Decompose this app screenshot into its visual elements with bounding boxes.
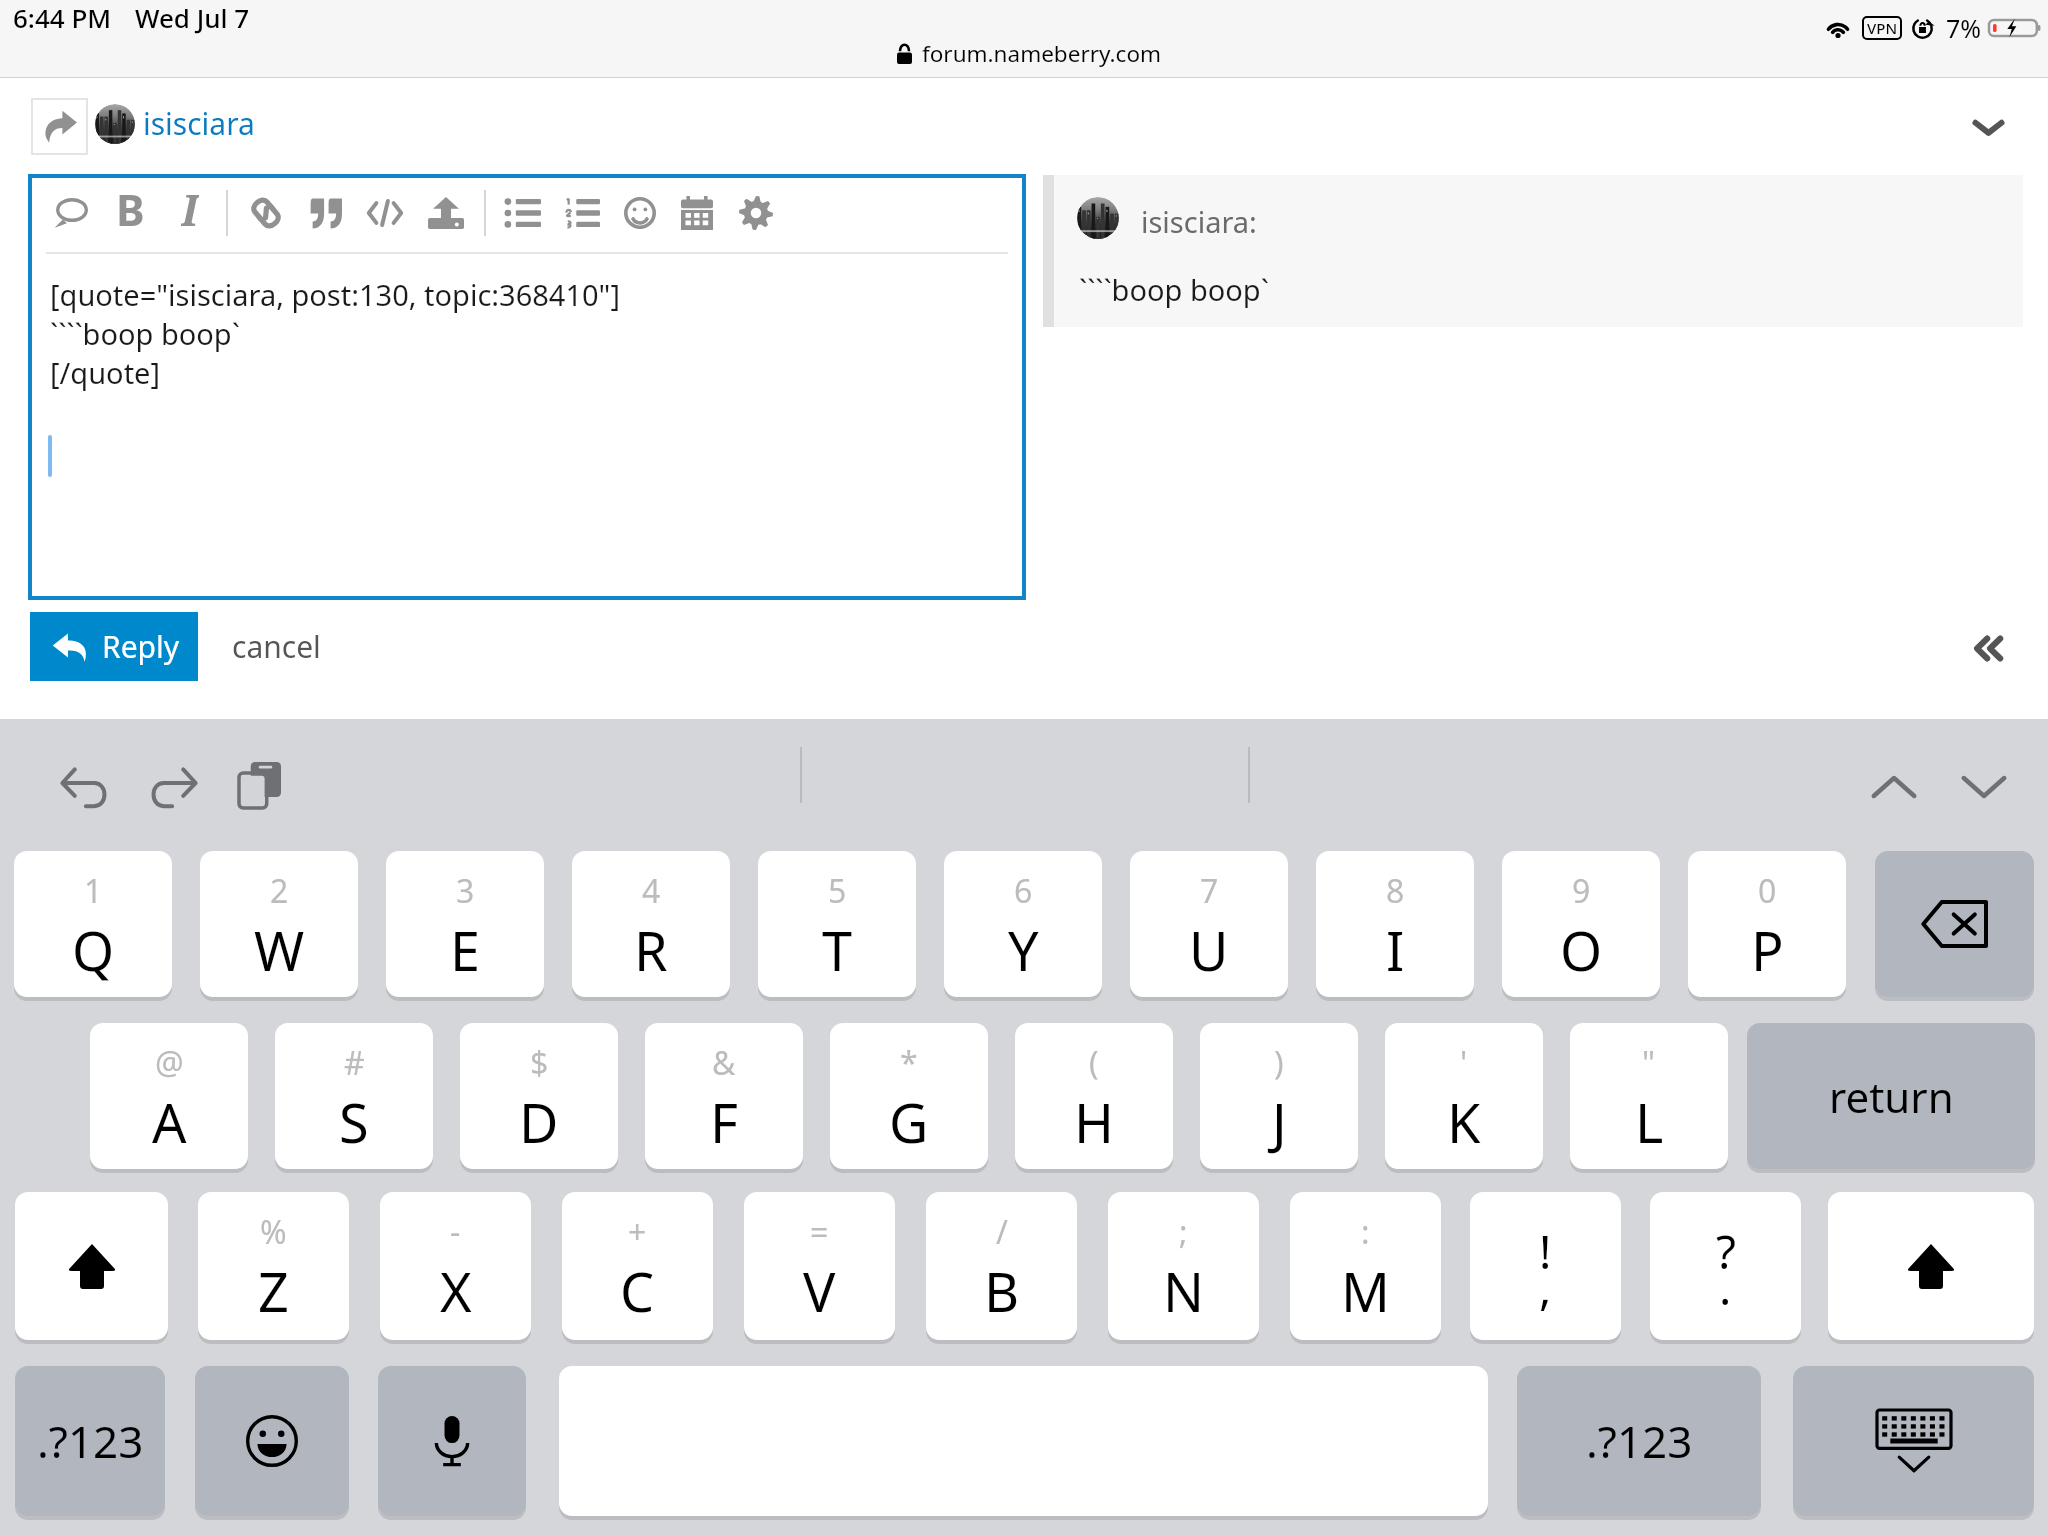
- staticText: .: [1719, 1256, 1732, 1319]
- staticText: Reply: [102, 626, 180, 667]
- staticText: J: [1272, 1085, 1287, 1159]
- staticText: 8: [1386, 869, 1405, 913]
- button[interactable]: Shift: [15, 1192, 168, 1340]
- staticText: ": [1642, 1041, 1656, 1085]
- staticText: /: [996, 1210, 1008, 1254]
- button[interactable]: .?123: [15, 1366, 165, 1516]
- staticText: Q: [72, 913, 115, 987]
- button[interactable]: return: [1747, 1023, 2035, 1169]
- button[interactable]: &: [645, 1023, 803, 1169]
- button[interactable]: !: [1470, 1192, 1621, 1340]
- button[interactable]: 5: [758, 851, 916, 997]
- button[interactable]: 4: [572, 851, 730, 997]
- staticText: 1: [84, 869, 103, 913]
- staticText: I: [181, 180, 199, 232]
- button[interactable]: Bulleted list: [497, 187, 549, 239]
- staticText: isisciara:: [1141, 202, 1257, 241]
- button[interactable]: Collapse editor: [1940, 600, 2036, 696]
- staticText: .?123: [1586, 1411, 1693, 1471]
- staticText: .?123: [37, 1411, 144, 1471]
- staticText: R: [634, 913, 668, 987]
- button[interactable]: ": [1570, 1023, 1728, 1169]
- button[interactable]: Blockquote: [45, 187, 97, 239]
- staticText: $: [530, 1041, 549, 1085]
- staticText: [/quote]: [50, 353, 160, 392]
- staticText: 5: [828, 869, 847, 913]
- button[interactable]: Italic: [164, 180, 216, 232]
- button[interactable]: Upload: [420, 187, 472, 239]
- button[interactable]: Code: [359, 187, 411, 239]
- button[interactable]: -: [380, 1192, 531, 1340]
- button[interactable]: Emoji: [195, 1366, 349, 1516]
- staticText: isisciara: [143, 103, 255, 144]
- staticText: K: [1447, 1085, 1481, 1159]
- button[interactable]: Paste: [228, 753, 292, 817]
- button[interactable]: ?: [1650, 1192, 1801, 1340]
- button[interactable]: 1: [14, 851, 172, 997]
- button[interactable]: Numbered list: [556, 187, 608, 239]
- button[interactable]: Reply: [30, 612, 198, 681]
- button[interactable]: 2: [200, 851, 358, 997]
- staticText: 2: [270, 869, 289, 913]
- staticText: Z: [258, 1254, 289, 1328]
- staticText: F: [710, 1085, 739, 1159]
- staticText: 4: [642, 869, 661, 913]
- staticText: ;: [1179, 1210, 1188, 1254]
- staticText: B: [116, 180, 145, 232]
- button[interactable]: (: [1015, 1023, 1173, 1169]
- button[interactable]: Undo: [52, 755, 116, 819]
- button[interactable]: ): [1200, 1023, 1358, 1169]
- button[interactable]: $: [460, 1023, 618, 1169]
- staticText: VPN: [1867, 18, 1898, 38]
- button[interactable]: #: [275, 1023, 433, 1169]
- staticText: ````boop boop`: [1079, 270, 1269, 309]
- button[interactable]: isisciara: [95, 103, 255, 144]
- staticText: E: [450, 913, 481, 987]
- button[interactable]: 3: [386, 851, 544, 997]
- button[interactable]: @: [90, 1023, 248, 1169]
- button[interactable]: Quote: [300, 187, 352, 239]
- staticText: @: [155, 1041, 184, 1085]
- button[interactable]: cancel: [232, 626, 321, 667]
- button[interactable]: /: [926, 1192, 1077, 1340]
- button[interactable]: ': [1385, 1023, 1543, 1169]
- button[interactable]: Emoji: [614, 187, 666, 239]
- button[interactable]: .?123: [1517, 1366, 1761, 1516]
- button[interactable]: Hide keyboard: [1793, 1366, 2034, 1516]
- staticText: X: [440, 1254, 472, 1328]
- button[interactable]: 0: [1688, 851, 1846, 997]
- button[interactable]: 9: [1502, 851, 1660, 997]
- button[interactable]: Shift: [1828, 1192, 2034, 1340]
- staticText: %: [260, 1210, 287, 1254]
- staticText: #: [344, 1041, 365, 1085]
- staticText: 0: [1758, 869, 1777, 913]
- staticText: *: [900, 1041, 918, 1085]
- staticText: (: [1089, 1041, 1099, 1085]
- staticText: return: [1829, 1068, 1954, 1125]
- staticText: =: [810, 1210, 829, 1254]
- button[interactable]: 8: [1316, 851, 1474, 997]
- button[interactable]: Options: [730, 187, 782, 239]
- button[interactable]: Next: [1952, 755, 2016, 819]
- staticText: G: [889, 1085, 929, 1159]
- button[interactable]: Backspace: [1875, 851, 2034, 997]
- button[interactable]: =: [744, 1192, 895, 1340]
- button[interactable]: Dictate: [378, 1366, 526, 1516]
- staticText: 9: [1572, 869, 1591, 913]
- button[interactable]: Bold: [104, 180, 156, 232]
- button[interactable]: *: [830, 1023, 988, 1169]
- button[interactable]: Calendar: [671, 187, 723, 239]
- button[interactable]: Previous: [1862, 755, 1926, 819]
- button[interactable]: :: [1290, 1192, 1441, 1340]
- button[interactable]: Collapse: [1956, 95, 2020, 159]
- button[interactable]: Share: [31, 98, 88, 155]
- button[interactable]: 6: [944, 851, 1102, 997]
- button[interactable]: +: [562, 1192, 713, 1340]
- staticText: S: [339, 1085, 369, 1159]
- button[interactable]: Redo: [142, 755, 206, 819]
- button[interactable]: %: [198, 1192, 349, 1340]
- button[interactable]: 7: [1130, 851, 1288, 997]
- button[interactable]: ;: [1108, 1192, 1259, 1340]
- button[interactable]: Link: [240, 187, 292, 239]
